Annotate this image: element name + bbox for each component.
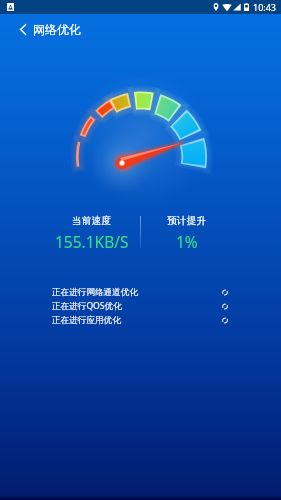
- staticText: 正在进行网络通道优化: [52, 287, 138, 298]
- staticText: 预计提升: [167, 215, 207, 227]
- button[interactable]: 正在进行QOS优化: [52, 299, 229, 313]
- staticText: 10:43: [253, 1, 277, 13]
- staticText: 1%: [176, 231, 198, 252]
- staticText: 155.1KB/S: [55, 231, 129, 252]
- staticText: 正在进行QOS优化: [52, 300, 122, 312]
- staticText: 当前速度: [72, 215, 112, 227]
- staticText: 网络优化: [33, 22, 81, 37]
- button[interactable]: 正在进行网络通道优化: [52, 285, 229, 299]
- staticText: 正在进行应用优化: [52, 315, 121, 326]
- button[interactable]: 正在进行应用优化: [52, 313, 229, 327]
- button[interactable]: Back: [0, 14, 33, 45]
